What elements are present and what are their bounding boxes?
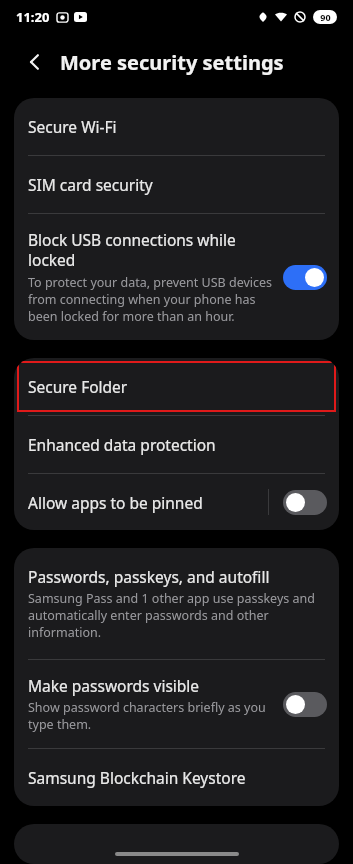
button[interactable]: On xyxy=(283,265,327,290)
button[interactable]: Samsung Blockchain Keystore xyxy=(17,752,336,803)
staticText: Enhanced data protection xyxy=(28,434,216,455)
staticText: Secure Wi-Fi xyxy=(28,116,117,137)
staticText: To protect your data, prevent USB device… xyxy=(28,274,273,325)
button[interactable]: Block USB connections while locked xyxy=(14,214,339,340)
button[interactable]: SIM card security xyxy=(17,159,336,210)
staticText: SIM card security xyxy=(28,174,153,195)
staticText: Show password characters briefly as you … xyxy=(28,699,273,733)
button[interactable]: Make passwords visible xyxy=(14,660,339,748)
staticText: 11:20 xyxy=(16,8,50,26)
button[interactable] xyxy=(14,824,339,864)
button[interactable]: Off xyxy=(283,490,327,515)
staticText: More security settings xyxy=(60,49,284,76)
staticText: Secure Folder xyxy=(28,376,128,397)
staticText: Samsung Pass and 1 other app use passkey… xyxy=(28,590,325,641)
staticText: Samsung Blockchain Keystore xyxy=(28,767,246,788)
button[interactable]: Back xyxy=(18,45,52,79)
staticText: Allow apps to be pinned xyxy=(28,492,203,513)
button[interactable]: Passwords, passkeys, and autofill xyxy=(17,551,336,656)
button[interactable]: Secure Wi-Fi xyxy=(17,101,336,152)
button[interactable]: Allow apps to be pinned xyxy=(14,474,339,530)
staticText: Block USB connections while locked xyxy=(28,229,273,271)
staticText: Passwords, passkeys, and autofill xyxy=(28,566,270,587)
button[interactable]: Secure Folder xyxy=(17,361,336,412)
button[interactable]: Enhanced data protection xyxy=(17,419,336,470)
button[interactable]: Off xyxy=(283,692,327,717)
staticText: Make passwords visible xyxy=(28,675,200,696)
staticText: 90 xyxy=(320,11,331,23)
